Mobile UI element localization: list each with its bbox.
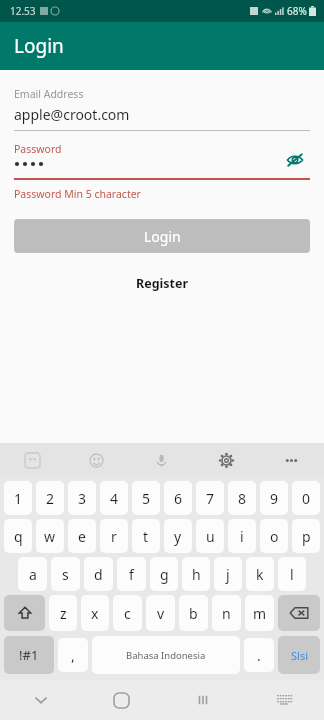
button[interactable]: n — [212, 595, 241, 631]
button[interactable]: Register — [14, 275, 310, 292]
staticText: apple@croot.com — [14, 105, 130, 124]
staticText: c — [124, 604, 131, 623]
staticText: j — [226, 565, 230, 584]
button[interactable]: m — [245, 595, 274, 631]
button[interactable]: Voice input — [129, 443, 194, 477]
staticText: v — [157, 604, 165, 623]
staticText: f — [129, 565, 134, 584]
button[interactable]: 0 — [292, 481, 320, 515]
button[interactable]: r — [100, 519, 128, 553]
button[interactable]: k — [246, 557, 274, 591]
button[interactable]: t — [132, 519, 160, 553]
button[interactable]: More options — [259, 443, 324, 477]
staticText: g — [160, 565, 169, 584]
staticText: 5 — [142, 489, 151, 508]
button[interactable]: b — [179, 595, 208, 631]
staticText: 9 — [270, 489, 279, 508]
button[interactable]: c — [113, 595, 142, 631]
button[interactable]: i — [228, 519, 256, 553]
button[interactable]: f — [117, 557, 146, 591]
staticText: x — [91, 604, 99, 623]
button[interactable]: Stickers — [0, 443, 64, 477]
staticText: a — [29, 565, 37, 584]
staticText: l — [290, 565, 294, 584]
staticText: Register — [136, 275, 189, 292]
staticText: p — [302, 527, 311, 546]
staticText: 3 — [78, 489, 87, 508]
button[interactable]: Bahasa Indonesia — [92, 636, 240, 674]
staticText: m — [253, 604, 267, 623]
staticText: Email Address — [14, 87, 84, 101]
staticText: 0 — [302, 489, 311, 508]
staticText: i — [240, 527, 244, 546]
button[interactable]: , — [58, 638, 88, 672]
button[interactable]: Keyboard settings — [194, 443, 259, 477]
button[interactable]: 8 — [228, 481, 256, 515]
button[interactable]: a — [18, 557, 47, 591]
staticText: e — [78, 527, 86, 546]
staticText: . — [257, 646, 261, 665]
button[interactable]: 7 — [196, 481, 224, 515]
staticText: 2 — [46, 489, 55, 508]
button[interactable]: Hide password — [280, 145, 310, 175]
button[interactable]: Emoji — [64, 443, 129, 477]
staticText: d — [94, 565, 103, 584]
staticText: 12.53 — [10, 4, 36, 18]
staticText: 68% — [287, 4, 307, 18]
button[interactable]: 5 — [132, 481, 160, 515]
staticText: z — [60, 604, 67, 623]
staticText: 7 — [206, 489, 215, 508]
button[interactable]: 2 — [36, 481, 64, 515]
button[interactable]: Login — [14, 219, 310, 253]
button[interactable]: Hide keyboard — [0, 680, 81, 720]
button[interactable]: h — [182, 557, 210, 591]
button[interactable]: w — [36, 519, 64, 553]
staticText: 6 — [174, 489, 183, 508]
staticText: t — [143, 527, 149, 546]
button[interactable]: d — [84, 557, 113, 591]
staticText: Login — [14, 33, 64, 59]
staticText: Slsi — [291, 648, 308, 663]
button[interactable]: x — [81, 595, 109, 631]
staticText: !#1 — [19, 646, 39, 664]
button[interactable]: Shift — [4, 595, 45, 631]
staticText: k — [256, 565, 264, 584]
staticText: w — [44, 527, 56, 546]
button[interactable]: g — [150, 557, 178, 591]
button[interactable]: !#1 — [4, 636, 54, 674]
button[interactable]: 6 — [164, 481, 192, 515]
staticText: 1 — [14, 489, 23, 508]
button[interactable]: p — [292, 519, 320, 553]
button[interactable]: Backspace — [278, 595, 320, 631]
button[interactable]: q — [4, 519, 32, 553]
button[interactable]: o — [260, 519, 288, 553]
button[interactable]: v — [146, 595, 175, 631]
button[interactable]: . — [244, 638, 274, 672]
button[interactable]: l — [278, 557, 306, 591]
staticText: u — [206, 527, 215, 546]
button[interactable]: z — [49, 595, 77, 631]
staticText: y — [174, 527, 182, 546]
staticText: Login — [144, 227, 181, 246]
staticText: q — [14, 527, 23, 546]
button[interactable]: 9 — [260, 481, 288, 515]
staticText: , — [71, 646, 75, 665]
button[interactable]: y — [164, 519, 192, 553]
button[interactable]: Home — [81, 680, 162, 720]
staticText: Bahasa Indonesia — [126, 649, 206, 662]
button[interactable]: 4 — [100, 481, 128, 515]
staticText: r — [111, 527, 117, 546]
button[interactable]: Recents — [162, 680, 243, 720]
button[interactable]: e — [68, 519, 96, 553]
staticText: o — [270, 527, 279, 546]
staticText: h — [192, 565, 201, 584]
button[interactable]: 3 — [68, 481, 96, 515]
button[interactable]: 1 — [4, 481, 32, 515]
button[interactable]: u — [196, 519, 224, 553]
staticText: s — [62, 565, 69, 584]
button[interactable]: j — [214, 557, 242, 591]
staticText: 8 — [238, 489, 247, 508]
button[interactable]: Slsi — [278, 636, 320, 674]
button[interactable]: s — [51, 557, 80, 591]
button[interactable]: Change keyboard — [243, 680, 324, 720]
